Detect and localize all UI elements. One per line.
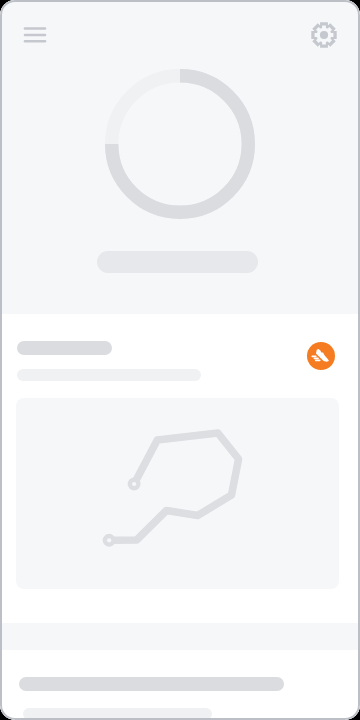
button[interactable]: Settings <box>300 11 348 59</box>
button[interactable]: Menu <box>11 11 59 59</box>
button[interactable]: Running activity <box>307 342 335 370</box>
